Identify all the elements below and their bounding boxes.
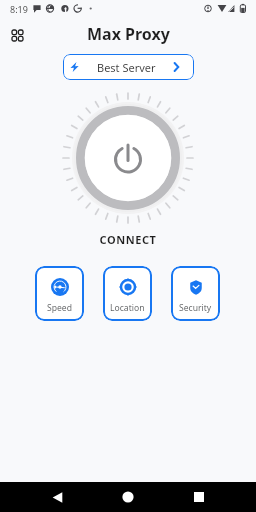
button[interactable]: Speed [35, 266, 84, 321]
button[interactable]: Menu [6, 24, 29, 47]
staticText: Location [110, 302, 145, 314]
staticText: CONNECT [0, 232, 256, 247]
button[interactable]: Connect [58, 88, 198, 228]
button[interactable]: Best Server [63, 54, 194, 80]
button[interactable]: Security [171, 266, 220, 321]
staticText: Speed [47, 302, 72, 314]
button[interactable]: Home [113, 482, 143, 512]
staticText: Security [179, 302, 212, 314]
button[interactable]: Recents [184, 482, 214, 512]
staticText: Best Server [97, 60, 156, 75]
button[interactable]: Back [42, 482, 72, 512]
button[interactable]: Location [103, 266, 152, 321]
staticText: Max Proxy [87, 23, 170, 45]
staticText: 8:19 [10, 3, 28, 15]
